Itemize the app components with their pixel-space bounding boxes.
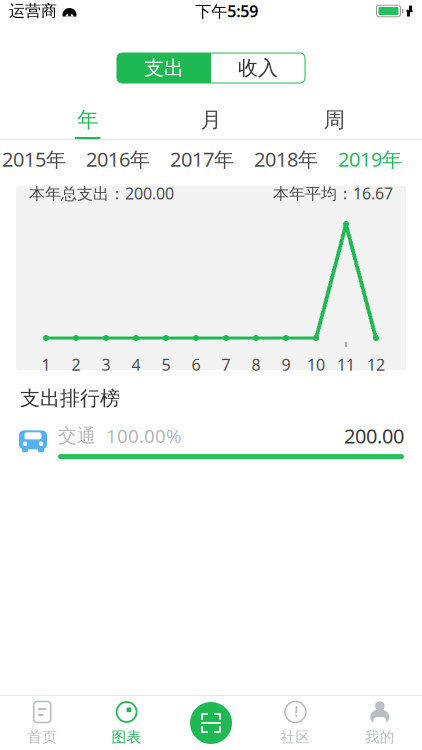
button[interactable]: 年 [26, 101, 149, 139]
staticText: 首页 [27, 728, 57, 746]
staticText: 我的 [365, 728, 395, 746]
staticText: 3 [101, 354, 110, 375]
staticText: 下午5:59 [195, 0, 258, 22]
staticText: 100.00% [96, 423, 182, 448]
button[interactable]: 2016年 [76, 140, 160, 178]
staticText: 社区 [280, 728, 310, 746]
staticText: 2015年 [2, 146, 66, 172]
button[interactable]: 2019年 [328, 140, 412, 178]
staticText: 12 [367, 354, 385, 375]
staticText: 本年总支出：200.00 [29, 183, 174, 204]
staticText: 1 [41, 354, 50, 375]
staticText: 10 [307, 354, 325, 375]
staticText: 本年平均：16.67 [273, 183, 393, 204]
button[interactable]: 首页 [0, 696, 84, 750]
staticText: 2017年 [170, 146, 234, 172]
button[interactable]: 2018年 [244, 140, 328, 178]
button[interactable]: 月 [149, 101, 273, 139]
staticText: 图表 [112, 728, 142, 746]
staticText: 6 [191, 354, 200, 375]
button[interactable]: 社区 [253, 696, 338, 750]
staticText: 收入 [238, 56, 278, 80]
staticText: 2016年 [86, 146, 150, 172]
staticText: 2018年 [254, 146, 318, 172]
staticText: 支出 [144, 56, 184, 80]
staticText: 7 [221, 354, 230, 375]
staticText: 5 [161, 354, 170, 375]
button[interactable]: 周 [273, 101, 396, 139]
staticText: 年 [77, 107, 98, 133]
staticText: 9 [281, 354, 290, 375]
button[interactable]: 2015年 [0, 140, 76, 178]
staticText: 4 [131, 354, 140, 375]
staticText: 月 [200, 107, 221, 133]
button[interactable]: 我的 [338, 696, 422, 750]
staticText: 2 [71, 354, 80, 375]
button[interactable]: 2017年 [160, 140, 244, 178]
staticText: 运营商 [9, 1, 57, 21]
button[interactable]: 扫一扫 [183, 696, 239, 750]
button[interactable]: 收入 [211, 53, 305, 83]
staticText: 200.00 [344, 423, 404, 449]
staticText: 8 [251, 354, 260, 375]
staticText: 周 [324, 107, 345, 133]
button[interactable]: 图表 [84, 696, 169, 750]
button[interactable]: 支出 [117, 53, 211, 83]
staticText: 支出排行榜 [20, 386, 120, 411]
button[interactable]: 交通 [0, 411, 422, 467]
staticText: 交通 [58, 424, 96, 447]
staticText: 2019年 [338, 146, 402, 172]
staticText: 11 [337, 354, 355, 375]
